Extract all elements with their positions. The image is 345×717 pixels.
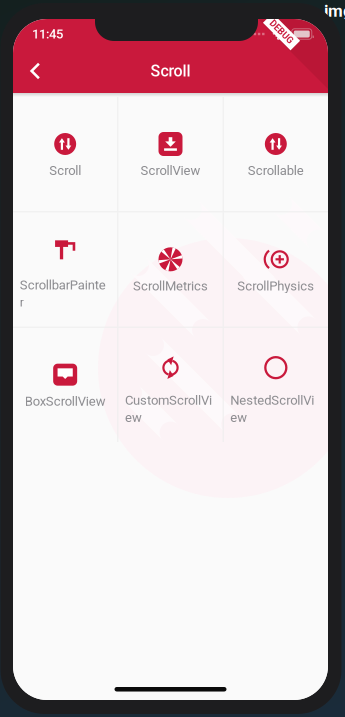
- staticText: r: [20, 295, 24, 310]
- button[interactable]: ScrollMetrics: [118, 212, 223, 327]
- staticText: 11:45: [32, 26, 63, 42]
- staticText: ScrollView: [140, 163, 200, 178]
- staticText: Scrollable: [248, 163, 304, 178]
- button[interactable]: BoxScrollView: [13, 328, 117, 442]
- staticText: ew: [125, 410, 142, 425]
- staticText: ScrollMetrics: [133, 278, 208, 293]
- staticText: BoxScrollView: [25, 394, 106, 409]
- staticText: CustomScrollVi: [125, 393, 212, 408]
- button[interactable]: NestedScrollVi: [224, 328, 328, 442]
- button[interactable]: Scroll: [13, 97, 117, 211]
- button[interactable]: Back: [13, 49, 54, 93]
- staticText: ScrollbarPainte: [20, 277, 106, 292]
- staticText: DEBUG: [267, 26, 296, 37]
- staticText: Scroll: [150, 62, 190, 80]
- staticText: img: [324, 1, 345, 21]
- staticText: ew: [230, 410, 247, 425]
- button[interactable]: Scrollable: [224, 97, 328, 211]
- button[interactable]: CustomScrollVi: [118, 328, 223, 442]
- button[interactable]: ScrollView: [118, 97, 223, 211]
- staticText: ScrollPhysics: [237, 278, 314, 293]
- button[interactable]: ScrollPhysics: [224, 212, 328, 327]
- staticText: Scroll: [49, 163, 81, 178]
- button[interactable]: ScrollbarPainte: [13, 212, 117, 327]
- staticText: NestedScrollVi: [230, 393, 314, 408]
